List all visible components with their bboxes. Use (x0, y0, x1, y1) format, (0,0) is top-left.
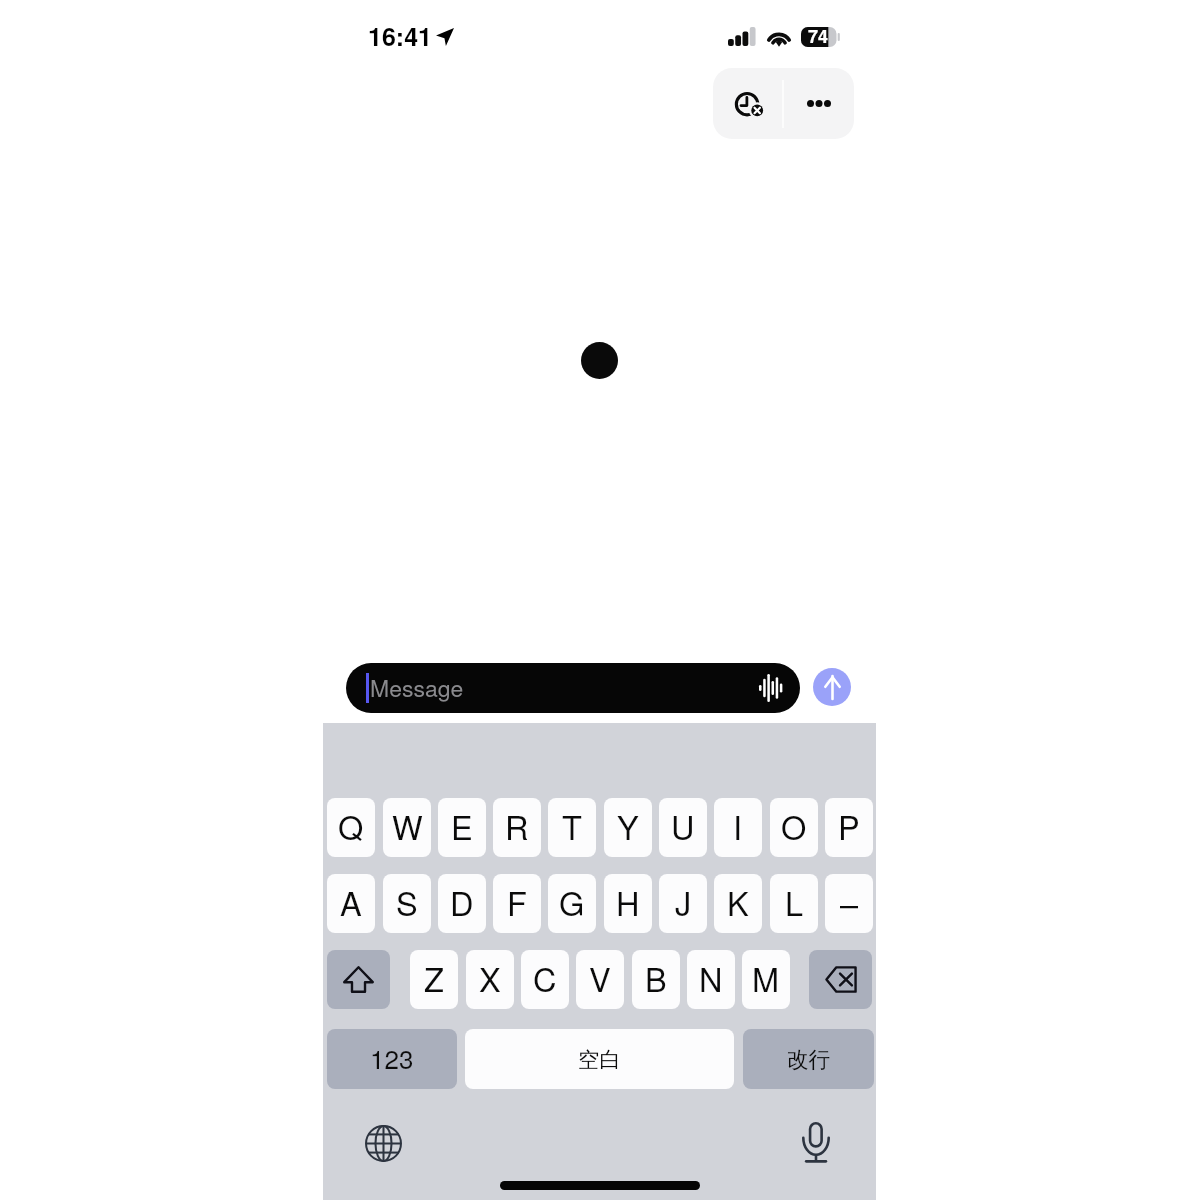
button[interactable]: X (466, 950, 514, 1009)
staticText: K (727, 879, 749, 926)
button[interactable]: F (493, 874, 541, 933)
staticText: 74 (805, 23, 831, 49)
button[interactable]: A (327, 874, 375, 933)
staticText: G (559, 879, 585, 926)
button[interactable]: W (383, 798, 431, 857)
staticText: I (733, 803, 743, 850)
staticText: Q (338, 803, 364, 850)
staticText: 空白 (578, 1046, 621, 1073)
staticText: A (340, 879, 362, 926)
button[interactable]: I (714, 798, 762, 857)
staticText: J (675, 879, 692, 926)
button[interactable]: Y (604, 798, 652, 857)
button[interactable]: Dictation (790, 1116, 842, 1168)
button[interactable]: G (548, 874, 596, 933)
staticText: S (396, 879, 418, 926)
button[interactable]: J (659, 874, 707, 933)
staticText: X (479, 955, 501, 1002)
staticText: H (616, 879, 640, 926)
staticText: M (752, 955, 780, 1002)
button[interactable]: O (770, 798, 818, 857)
button[interactable]: Backspace (809, 950, 872, 1009)
button[interactable]: N (687, 950, 735, 1009)
button[interactable]: 123 (327, 1029, 457, 1089)
staticText: E (451, 803, 473, 850)
staticText: 改行 (787, 1046, 830, 1073)
button[interactable]: Shift (327, 950, 390, 1009)
staticText: U (671, 803, 695, 850)
staticText: V (589, 955, 611, 1002)
staticText: W (392, 803, 423, 850)
button[interactable]: H (604, 874, 652, 933)
button[interactable]: Send (813, 668, 851, 706)
staticText: Z (424, 955, 444, 1002)
staticText: D (450, 879, 474, 926)
button[interactable]: U (659, 798, 707, 857)
staticText: L (785, 879, 804, 926)
staticText: C (533, 955, 557, 1002)
button[interactable]: D (438, 874, 486, 933)
button[interactable]: M (742, 950, 790, 1009)
button[interactable]: Clear history (713, 68, 783, 139)
button[interactable]: B (632, 950, 680, 1009)
staticText: P (838, 803, 860, 850)
button[interactable]: More options (784, 68, 854, 139)
button[interactable]: E (438, 798, 486, 857)
button[interactable]: P (825, 798, 873, 857)
button[interactable]: T (548, 798, 596, 857)
button[interactable]: R (493, 798, 541, 857)
button[interactable]: 空白 (465, 1029, 734, 1089)
staticText: B (645, 955, 667, 1002)
button[interactable]: 改行 (743, 1029, 874, 1089)
button[interactable]: V (576, 950, 624, 1009)
staticText: T (562, 803, 582, 850)
button[interactable]: C (521, 950, 569, 1009)
staticText: 123 (370, 1039, 414, 1076)
button[interactable]: K (714, 874, 762, 933)
staticText: Y (617, 803, 639, 850)
button[interactable]: L (770, 874, 818, 933)
button[interactable]: S (383, 874, 431, 933)
button[interactable]: – (825, 874, 873, 933)
staticText: N (699, 955, 723, 1002)
button[interactable]: Change keyboard (359, 1119, 407, 1167)
staticText: – (840, 879, 859, 926)
staticText: R (505, 803, 529, 850)
button[interactable]: Z (410, 950, 458, 1009)
staticText: O (781, 803, 807, 850)
button[interactable]: Q (327, 798, 375, 857)
staticText: 16:41 (368, 18, 432, 54)
staticText: F (507, 879, 527, 926)
button[interactable]: Message (346, 663, 800, 713)
staticText: Message (370, 671, 464, 704)
